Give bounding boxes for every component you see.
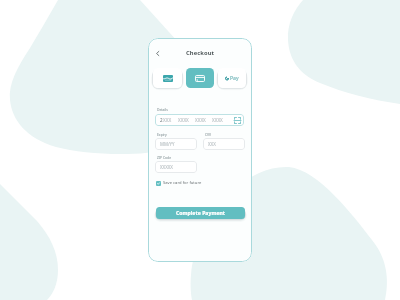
staticText: XXXX — [178, 117, 189, 123]
button[interactable]: Save card for future — [156, 180, 202, 186]
staticText: Details — [157, 107, 168, 112]
staticText: XXXX — [212, 117, 223, 123]
button[interactable]: Back — [151, 46, 163, 60]
button[interactable]: Complete Payment — [156, 207, 245, 219]
button[interactable]: XXXXX — [155, 161, 197, 173]
staticText: XXXXX — [160, 164, 173, 170]
staticText: Expiry — [157, 132, 167, 137]
staticText: 2 — [160, 117, 163, 123]
staticText: XXX — [208, 141, 216, 147]
staticText: Complete Payment — [176, 210, 226, 217]
button[interactable]: PayPal — [153, 68, 182, 88]
button[interactable]: 2 — [155, 114, 244, 126]
staticText: MM/YY — [160, 141, 175, 147]
button[interactable]: Credit card — [186, 68, 214, 88]
staticText: Checkout — [186, 49, 215, 57]
button[interactable]: MM/YY — [155, 138, 197, 150]
staticText: ZIP Code — [157, 155, 172, 160]
staticText: CVV — [205, 132, 212, 137]
staticText: XXXX — [195, 117, 206, 123]
staticText: Save card for future — [163, 180, 202, 186]
button[interactable]: XXX — [203, 138, 245, 150]
staticText: Pay — [230, 75, 239, 82]
button[interactable]: Google Pay — [218, 68, 246, 88]
staticText: XXX — [163, 117, 172, 123]
